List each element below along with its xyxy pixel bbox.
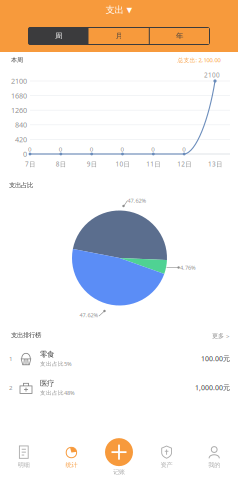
staticText: 100.00元 [201, 354, 230, 363]
staticText: 支出占比48% [40, 389, 75, 396]
staticText: 0 [151, 145, 155, 153]
staticText: 0 [23, 149, 27, 159]
staticText: 0 [28, 145, 32, 153]
button[interactable]: 我的 [190, 434, 238, 480]
staticText: 支出排行榜 [11, 331, 41, 339]
staticText: 总支出: 2,100.00 [177, 56, 220, 64]
staticText: > [226, 332, 230, 340]
staticText: 9日 [87, 160, 97, 168]
staticText: 2 [9, 383, 13, 392]
staticText: 周 [55, 31, 62, 41]
staticText: 1,000.00元 [195, 383, 230, 392]
staticText: 840 [15, 120, 27, 130]
staticText: 资产 [161, 461, 173, 469]
staticText: 12日 [177, 160, 191, 168]
button[interactable]: 月 [89, 27, 149, 45]
staticText: 明细 [18, 461, 30, 469]
staticText: 支出占比 [9, 181, 33, 189]
staticText: 支出占比5% [40, 360, 72, 367]
staticText: 2100 [204, 71, 220, 79]
staticText: 47.62% [79, 311, 98, 319]
staticText: 7日 [25, 160, 35, 168]
staticText: 0 [90, 145, 94, 153]
button[interactable]: 统计 [48, 434, 95, 480]
staticText: 1680 [11, 91, 27, 100]
staticText: 月 [115, 31, 122, 41]
staticText: 1 [9, 354, 13, 363]
button[interactable]: 更多 [198, 330, 230, 342]
staticText: 更多 [212, 332, 224, 340]
button[interactable]: 1 [0, 344, 238, 373]
staticText: 1260 [11, 105, 27, 115]
staticText: ▼ [126, 6, 132, 14]
button[interactable]: 记账 [95, 434, 143, 480]
staticText: 420 [15, 134, 27, 144]
staticText: 本周 [11, 56, 23, 64]
staticText: 统计 [65, 461, 77, 469]
staticText: 47.62% [127, 197, 146, 204]
staticText: 0 [120, 145, 124, 153]
staticText: 10日 [115, 160, 129, 168]
button[interactable]: 周 [28, 27, 89, 45]
staticText: 医疗 [40, 378, 54, 388]
staticText: 年 [176, 31, 183, 41]
staticText: 4.76% [180, 264, 196, 271]
staticText: 2100 [11, 76, 27, 86]
staticText: 0 [182, 145, 186, 153]
button[interactable]: 明细 [0, 434, 48, 480]
button[interactable]: 年 [149, 27, 210, 45]
staticText: 13日 [208, 160, 222, 168]
button[interactable]: 支出 [105, 3, 132, 17]
staticText: 记账 [113, 468, 125, 476]
button[interactable]: 2 [0, 373, 238, 402]
staticText: 支出 [105, 4, 123, 16]
staticText: 8日 [56, 160, 66, 168]
staticText: 11日 [146, 160, 160, 168]
staticText: 我的 [208, 461, 220, 469]
staticText: 零食 [40, 349, 54, 359]
button[interactable]: 资产 [143, 434, 190, 480]
staticText: 0 [59, 145, 63, 153]
